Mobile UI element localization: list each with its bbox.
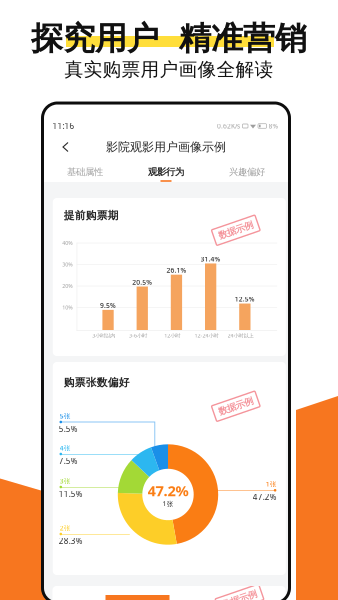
button[interactable]: 观影行为 (125, 164, 206, 184)
staticText: 5.5% (59, 424, 78, 434)
staticText: 8% (268, 122, 278, 130)
staticText: 20.5% (132, 278, 152, 286)
staticText: 5张 (60, 412, 71, 420)
staticText: 影院观影用户画像示例 (106, 140, 226, 154)
staticText: 28.3% (59, 536, 83, 546)
staticText: 3张 (60, 477, 71, 485)
staticText: 12.5% (235, 295, 255, 303)
staticText: 3小时以内 (92, 332, 115, 339)
staticText: 0.62K/s (217, 122, 240, 130)
staticText: 24小时以上 (228, 332, 254, 339)
staticText: 47.2% (253, 492, 277, 502)
staticText: 31.4% (201, 254, 221, 263)
staticText: 数据示例 (218, 400, 254, 412)
staticText: 3-6小时 (129, 332, 147, 339)
staticText: 20% (62, 282, 72, 289)
staticText: 购票张数偏好 (64, 376, 130, 389)
staticText: 12小时 (164, 332, 180, 339)
staticText: 26.1% (166, 266, 186, 275)
staticText: 提前购票期 (64, 209, 119, 222)
staticText: 基础属性 (67, 166, 103, 178)
button[interactable]: 兴趣偏好 (206, 164, 287, 184)
staticText: 兴趣偏好 (229, 166, 265, 178)
staticText: 探究用户 精准营销 (31, 19, 307, 58)
staticText: 11.5% (59, 489, 83, 499)
staticText: 1张 (266, 480, 277, 488)
button[interactable]: Back (54, 136, 76, 158)
staticText: 4张 (60, 444, 71, 452)
staticText: 11:16 (52, 121, 74, 131)
staticText: 数据示例 (221, 593, 257, 600)
staticText: 1张 (162, 499, 173, 508)
button[interactable]: 基础属性 (44, 164, 125, 184)
staticText: 数据示例 (218, 224, 254, 236)
staticText: 12-24小时 (194, 332, 218, 339)
staticText: 2张 (60, 524, 71, 532)
staticText: 10% (62, 304, 72, 311)
staticText: 40% (62, 239, 72, 246)
staticText: 30% (62, 261, 72, 268)
staticText: 7.5% (59, 456, 78, 466)
staticText: 真实购票用户画像全解读 (64, 58, 273, 81)
staticText: 47.2% (147, 481, 188, 500)
staticText: 9.5% (100, 301, 116, 310)
staticText: 观影行为 (148, 166, 184, 178)
